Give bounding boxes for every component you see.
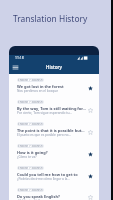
button[interactable]: Menu xyxy=(10,62,21,73)
staticText: English > Spanish xyxy=(18,188,43,192)
staticText: We got lost in the forest xyxy=(17,84,64,89)
staticText: English > Spanish xyxy=(18,144,43,148)
staticText: Nos perdimos en el bosque xyxy=(17,89,58,93)
staticText: ¿Podrías decirme cómo llegar a la… xyxy=(17,177,70,181)
button[interactable]: English > Spanish xyxy=(9,140,99,162)
button[interactable]: Favorite xyxy=(86,128,94,136)
button[interactable]: English > Spanish xyxy=(9,74,99,96)
button[interactable]: English > Spanish xyxy=(9,162,99,184)
staticText: English > Spanish xyxy=(18,166,43,170)
button[interactable]: Favorite xyxy=(86,106,94,114)
staticText: Could you tell me how to get to the… xyxy=(17,172,86,177)
staticText: ¿Cómo te va? xyxy=(17,155,37,159)
staticText: The point is that it is possible but… xyxy=(17,128,85,133)
staticText: El punto es que es posible pero no… xyxy=(17,133,71,137)
button[interactable]: Favorite xyxy=(86,194,94,200)
staticText: Por cierto, Tom sigue esperando tu… xyxy=(17,111,72,115)
button[interactable]: English > Spanish xyxy=(9,96,99,118)
staticText: English > Spanish xyxy=(18,78,43,82)
staticText: Translation History xyxy=(13,13,88,24)
staticText: History xyxy=(46,64,62,70)
button[interactable]: English > Spanish xyxy=(9,184,99,200)
staticText: ¿Hablas inglés? xyxy=(17,199,40,200)
staticText: 11:18 xyxy=(15,55,24,60)
button[interactable]: Favorite xyxy=(86,150,94,158)
staticText: By the way, Tom is still waiting for… xyxy=(17,106,86,111)
staticText: How is it going? xyxy=(17,150,48,155)
button[interactable]: Favorite xyxy=(86,172,94,180)
staticText: English > Spanish xyxy=(18,122,43,126)
staticText: English > Spanish xyxy=(18,100,43,104)
button[interactable]: Favorite xyxy=(86,84,94,92)
staticText: Do you speak English? xyxy=(17,194,60,199)
button[interactable]: English > Spanish xyxy=(9,118,99,140)
